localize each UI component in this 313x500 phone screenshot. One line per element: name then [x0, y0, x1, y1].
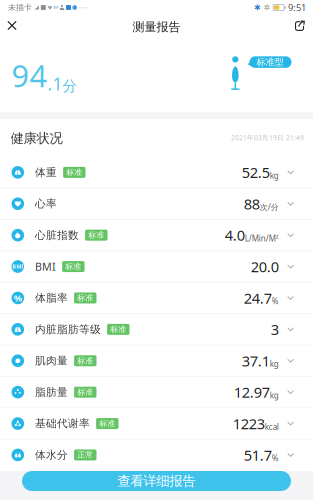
- staticText: 2021年03月19日 21:49: [231, 133, 304, 142]
- staticText: 测量报告: [132, 20, 180, 34]
- staticText: 9:51: [288, 1, 306, 14]
- staticText: %: [14, 292, 22, 304]
- staticText: 1223: [233, 414, 265, 433]
- staticText: 24.7: [244, 288, 272, 308]
- staticText: 脂肪量: [35, 386, 68, 399]
- staticText: 体水分: [35, 448, 68, 461]
- staticText: 12.97: [234, 382, 270, 402]
- staticText: kcal: [265, 421, 279, 432]
- staticText: 88: [244, 194, 260, 213]
- button[interactable]: 体重: [0, 157, 313, 188]
- staticText: 心脏指数: [35, 229, 79, 242]
- staticText: 未插卡: [8, 3, 32, 12]
- staticText: 标准: [88, 230, 104, 240]
- staticText: 标准: [77, 356, 93, 366]
- button[interactable]: 关闭: [0, 15, 24, 36]
- staticText: .1: [47, 72, 62, 95]
- button[interactable]: %: [0, 283, 313, 314]
- button[interactable]: 体水分: [0, 440, 313, 471]
- staticText: 3: [271, 320, 279, 339]
- staticText: 内脏脂肪等级: [35, 323, 101, 336]
- staticText: 标准: [110, 324, 126, 334]
- button[interactable]: 分享: [287, 15, 311, 36]
- button[interactable]: 心脏指数: [0, 220, 313, 251]
- button[interactable]: 心率: [0, 188, 313, 220]
- staticText: BMI: [35, 259, 56, 274]
- staticText: 次/分: [260, 202, 279, 212]
- staticText: ⋯: [78, 3, 86, 12]
- staticText: 94: [11, 55, 47, 96]
- staticText: 20.0: [251, 257, 279, 276]
- button[interactable]: BMI: [0, 251, 313, 283]
- staticText: 体重: [35, 166, 57, 179]
- staticText: 51.7: [244, 445, 272, 465]
- staticText: 标准: [65, 262, 81, 271]
- button[interactable]: 查看详细报告: [22, 471, 291, 491]
- staticText: kg: [270, 359, 279, 369]
- staticText: kg: [270, 170, 279, 181]
- staticText: 52.5: [242, 163, 270, 182]
- staticText: 分: [62, 77, 77, 95]
- staticText: %: [272, 296, 279, 306]
- button[interactable]: 内脏脂肪等级: [0, 314, 313, 345]
- staticText: 查看详细报告: [117, 473, 195, 489]
- button[interactable]: 脂肪量: [0, 377, 313, 408]
- button[interactable]: 基础代谢率: [0, 408, 313, 440]
- staticText: L/Min/M²: [245, 233, 279, 244]
- staticText: 标准: [99, 419, 115, 428]
- staticText: 健康状况: [10, 130, 62, 146]
- staticText: ✱: [254, 3, 261, 12]
- staticText: %: [272, 453, 279, 463]
- staticText: kg: [270, 390, 279, 401]
- staticText: 标准: [77, 387, 93, 397]
- staticText: 基础代谢率: [35, 417, 90, 430]
- staticText: ✲: [264, 3, 271, 12]
- staticText: 37.1: [242, 351, 270, 370]
- staticText: 标准型: [256, 56, 283, 68]
- staticText: 标准: [77, 293, 93, 303]
- staticText: BMI: [12, 263, 23, 270]
- staticText: 肌肉量: [35, 354, 68, 367]
- button[interactable]: 肌肉量: [0, 345, 313, 377]
- staticText: 心率: [35, 197, 57, 210]
- staticText: 4.0: [225, 225, 245, 245]
- staticText: 正常: [77, 450, 93, 460]
- staticText: 体脂率: [35, 291, 68, 304]
- staticText: 标准: [66, 167, 82, 177]
